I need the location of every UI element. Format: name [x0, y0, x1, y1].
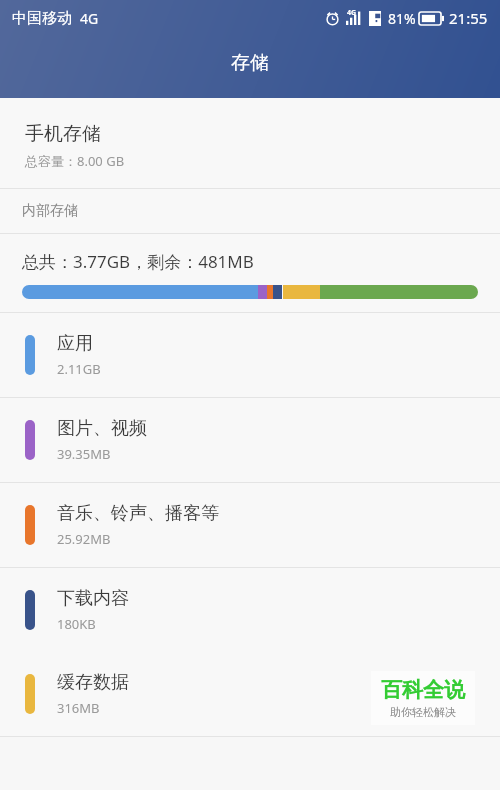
button[interactable]: 图片、视频	[0, 398, 500, 482]
staticText: 316MB	[57, 699, 100, 717]
staticText: 内部存储	[22, 202, 78, 220]
button[interactable]: 手机存储	[0, 98, 500, 188]
button[interactable]: 音乐、铃声、播客等	[0, 483, 500, 567]
staticText: 39.35MB	[57, 445, 111, 463]
staticText: 180KB	[57, 615, 96, 633]
staticText: 25.92MB	[57, 530, 111, 548]
staticText: 中国移动	[12, 9, 72, 28]
staticText: 缓存数据	[57, 671, 129, 694]
staticText: 助你轻松解决	[390, 705, 456, 719]
staticText: 音乐、铃声、播客等	[57, 502, 219, 525]
staticText: 存储	[231, 51, 269, 75]
staticText: 21:55	[449, 8, 488, 28]
staticText: 4G	[80, 9, 99, 28]
button[interactable]: 下载内容	[0, 568, 500, 652]
button[interactable]: 缓存数据	[0, 652, 500, 736]
staticText: 图片、视频	[57, 417, 147, 440]
staticText: 2.11GB	[57, 360, 101, 378]
button[interactable]: 应用	[0, 313, 500, 397]
staticText: 下载内容	[57, 587, 129, 610]
staticText: 手机存储	[25, 122, 101, 146]
staticText: 4G	[347, 8, 357, 18]
staticText: 总共：3.77GB，剩余：481MB	[22, 250, 254, 273]
staticText: 百科全说	[381, 677, 465, 703]
staticText: 总容量：8.00 GB	[25, 152, 125, 170]
staticText: 81%	[388, 9, 416, 28]
staticText: 应用	[57, 332, 93, 355]
